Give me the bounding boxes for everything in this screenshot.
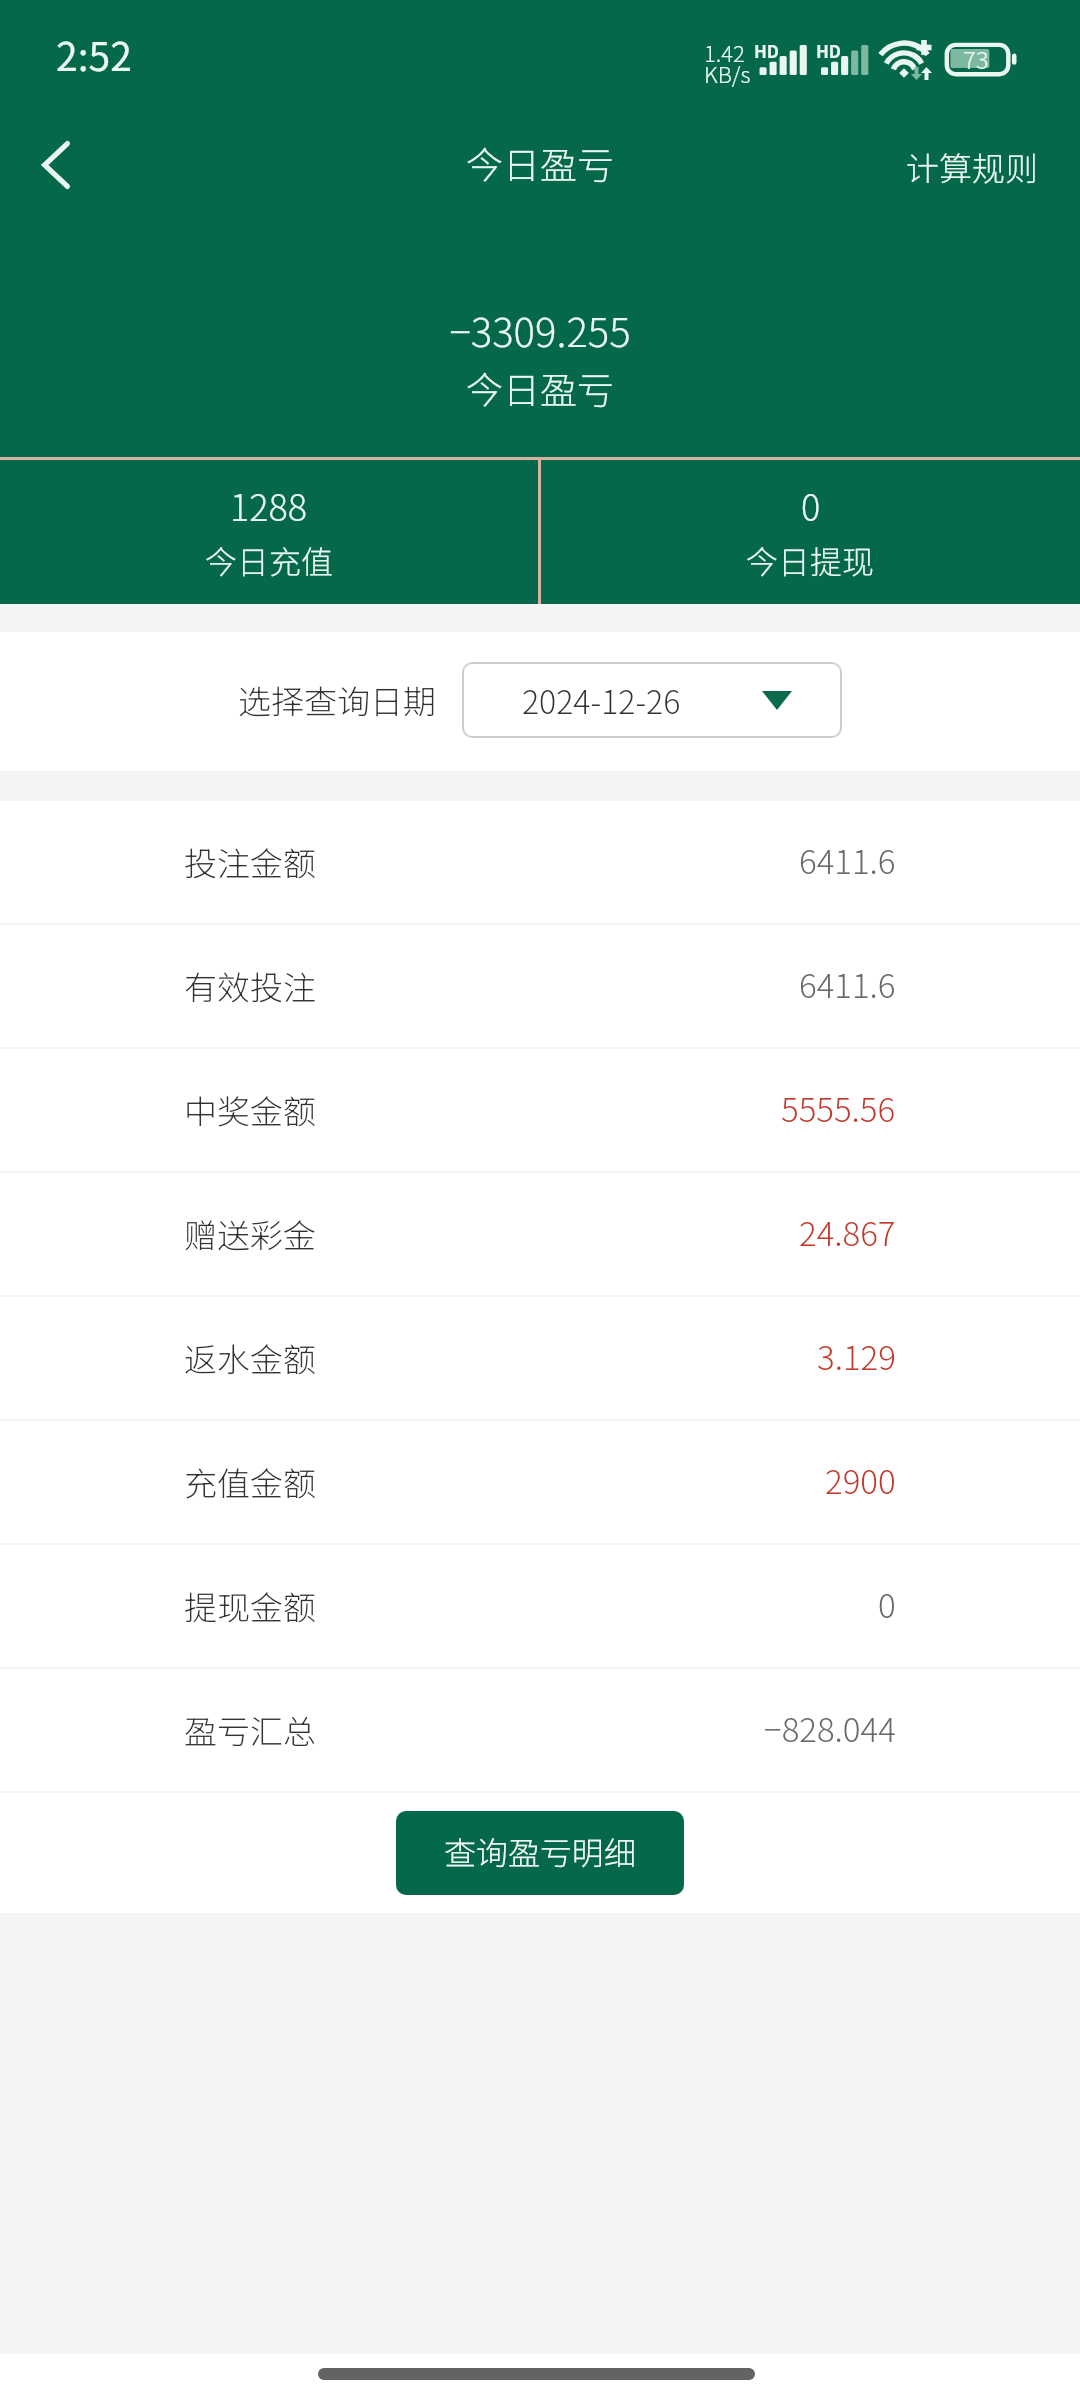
- staticText: 1.42: [704, 36, 745, 68]
- staticText: −3309.255: [449, 301, 631, 359]
- button[interactable]: 有效投注: [0, 925, 1080, 1047]
- staticText: −828.044: [764, 1704, 896, 1752]
- other: Home: [318, 2368, 755, 2380]
- staticText: 73: [963, 41, 989, 76]
- staticText: 返水金额: [184, 1334, 316, 1382]
- button[interactable]: 计算规则: [864, 123, 1080, 211]
- button[interactable]: 提现金额: [0, 1545, 1080, 1667]
- button[interactable]: Back: [0, 114, 112, 226]
- staticText: KB/s: [704, 57, 751, 89]
- staticText: 今日提现: [746, 537, 875, 583]
- staticText: 充值金额: [184, 1458, 316, 1506]
- button[interactable]: 投注金额: [0, 801, 1080, 923]
- staticText: 有效投注: [184, 962, 316, 1010]
- button[interactable]: 2024-12-26: [462, 662, 842, 738]
- staticText: 1288: [230, 479, 308, 531]
- staticText: 今日充值: [205, 537, 334, 583]
- staticText: 0: [878, 1580, 896, 1628]
- staticText: 盈亏汇总: [184, 1706, 316, 1754]
- staticText: 0: [801, 479, 821, 531]
- staticText: 5555.56: [781, 1084, 896, 1132]
- button[interactable]: 充值金额: [0, 1421, 1080, 1543]
- staticText: 2900: [825, 1456, 896, 1504]
- button[interactable]: 盈亏汇总: [0, 1669, 1080, 1791]
- button[interactable]: 查询盈亏明细: [396, 1811, 684, 1895]
- button[interactable]: 赠送彩金: [0, 1173, 1080, 1295]
- staticText: 赠送彩金: [184, 1210, 316, 1258]
- button[interactable]: 1288: [0, 460, 538, 604]
- staticText: 中奖金额: [184, 1086, 316, 1134]
- staticText: 6411.6: [799, 960, 896, 1008]
- staticText: 投注金额: [184, 838, 316, 886]
- staticText: 今日盈亏: [466, 361, 614, 415]
- button[interactable]: 返水金额: [0, 1297, 1080, 1419]
- button[interactable]: 0: [541, 460, 1080, 604]
- staticText: 6411.6: [799, 836, 896, 884]
- staticText: HD: [816, 38, 842, 63]
- staticText: 提现金额: [184, 1582, 316, 1630]
- staticText: 24.867: [799, 1208, 896, 1256]
- staticText: 计算规则: [906, 143, 1038, 191]
- staticText: 查询盈亏明细: [444, 1828, 637, 1874]
- staticText: 今日盈亏: [466, 136, 614, 190]
- button[interactable]: 中奖金额: [0, 1049, 1080, 1171]
- staticText: HD: [754, 38, 780, 63]
- staticText: 2:52: [56, 26, 132, 82]
- staticText: 2024-12-26: [522, 677, 681, 723]
- staticText: 选择查询日期: [238, 676, 436, 724]
- staticText: 3.129: [817, 1332, 896, 1380]
